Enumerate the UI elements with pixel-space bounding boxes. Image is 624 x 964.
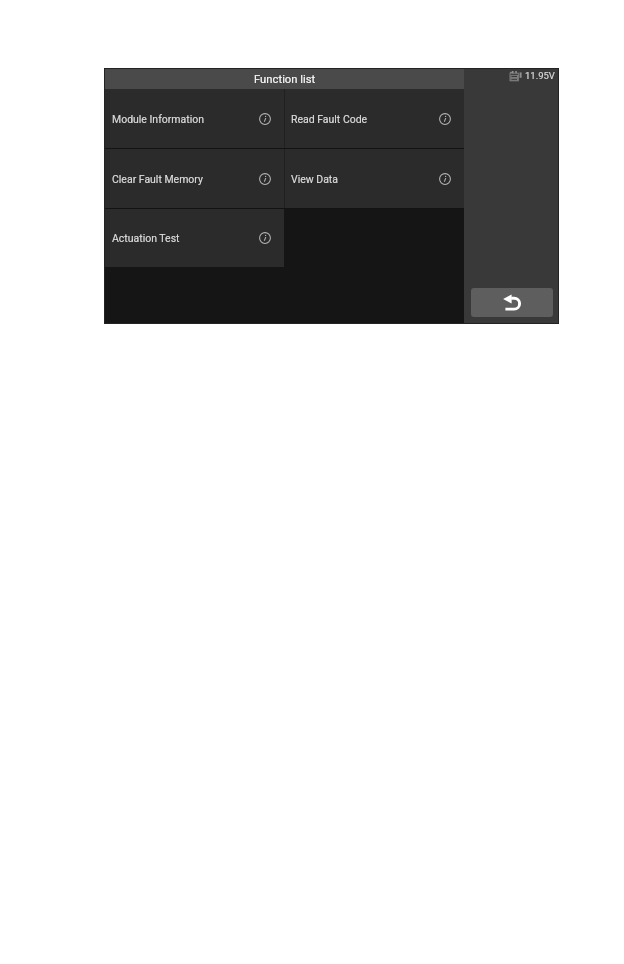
button[interactable]: View Data xyxy=(285,149,464,208)
button[interactable]: About Clear Fault Memory xyxy=(259,173,271,185)
button[interactable]: Actuation Test xyxy=(104,209,284,267)
button[interactable]: About Read Fault Code xyxy=(439,113,451,125)
button[interactable]: Module Information xyxy=(104,89,284,148)
button[interactable]: About Module Information xyxy=(259,113,271,125)
staticText: View Data xyxy=(291,173,338,185)
staticText: 11.95V xyxy=(525,70,556,81)
staticText: Function list xyxy=(254,72,315,85)
button[interactable]: Back xyxy=(471,288,553,317)
button[interactable]: Read Fault Code xyxy=(285,89,464,148)
button[interactable]: About Actuation Test xyxy=(259,232,271,244)
button[interactable]: About View Data xyxy=(439,173,451,185)
staticText: Clear Fault Memory xyxy=(112,173,203,185)
button[interactable]: Clear Fault Memory xyxy=(104,149,284,208)
staticText: Read Fault Code xyxy=(291,113,367,125)
staticText: Module Information xyxy=(112,113,204,125)
staticText: Actuation Test xyxy=(112,232,180,244)
